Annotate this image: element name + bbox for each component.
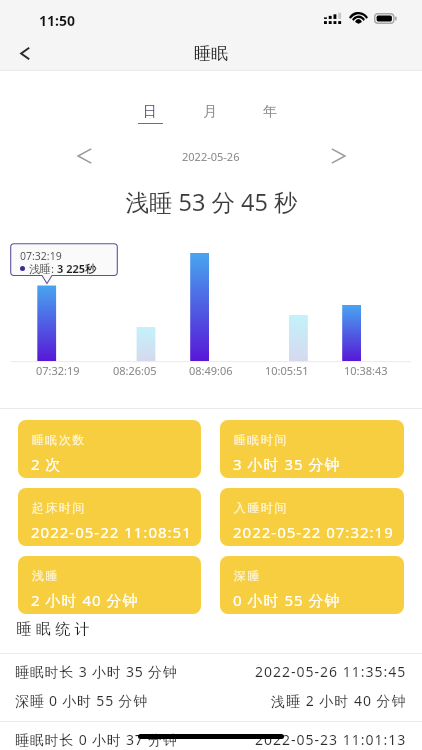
staticText: 起床时间 bbox=[31, 500, 85, 515]
staticText: 2022-05-26 bbox=[182, 149, 240, 164]
button[interactable]: Previous day bbox=[70, 143, 98, 169]
staticText: 睡眠次数 bbox=[31, 432, 85, 447]
button[interactable]: 睡眠时长 3 小时 35 分钟 bbox=[0, 657, 422, 686]
button[interactable]: 深睡 0 小时 55 分钟 bbox=[0, 686, 422, 715]
button[interactable]: 起床时间 bbox=[18, 488, 201, 546]
staticText: 0 小时 55 分钟 bbox=[233, 590, 341, 610]
staticText: 睡眠时长 3 小时 35 分钟 bbox=[15, 662, 178, 681]
button[interactable]: 年 bbox=[254, 103, 286, 123]
button[interactable]: 浅睡 bbox=[18, 556, 201, 614]
button[interactable]: 入睡时间 bbox=[220, 488, 404, 546]
staticText: 2 次 bbox=[31, 454, 62, 474]
button[interactable]: 睡眠时间 bbox=[220, 420, 404, 478]
staticText: 08:26:05 bbox=[113, 363, 157, 378]
staticText: 月 bbox=[203, 103, 217, 121]
staticText: 浅睡 53 分 45 秒 bbox=[125, 186, 298, 218]
staticText: 入睡时间 bbox=[233, 500, 287, 515]
staticText: 10:38:43 bbox=[344, 363, 388, 378]
button[interactable]: 睡眠时长 0 小时 37 分钟 bbox=[0, 725, 422, 750]
button[interactable]: Next day bbox=[324, 143, 352, 169]
staticText: 08:49:06 bbox=[189, 363, 233, 378]
staticText: 2022-05-26 11:35:45 bbox=[255, 662, 407, 681]
button[interactable]: 日 bbox=[134, 103, 166, 124]
staticText: 睡眠 bbox=[194, 43, 228, 64]
staticText: 3 225秒 bbox=[57, 261, 97, 276]
button[interactable]: 月 bbox=[194, 103, 226, 123]
staticText: 浅睡: bbox=[29, 261, 57, 276]
staticText: 浅睡 2 小时 40 分钟 bbox=[271, 691, 407, 710]
button[interactable]: Back bbox=[5, 36, 45, 71]
staticText: 07:32:19 bbox=[20, 249, 62, 263]
button[interactable]: 睡眠次数 bbox=[18, 420, 201, 478]
staticText: 深睡 0 小时 55 分钟 bbox=[15, 691, 148, 710]
staticText: 2022-05-22 11:08:51 bbox=[31, 522, 192, 542]
staticText: 10:05:51 bbox=[265, 363, 309, 378]
staticText: 11:50 bbox=[39, 11, 75, 30]
staticText: 07:32:19 bbox=[36, 363, 80, 378]
staticText: 3 小时 35 分钟 bbox=[233, 454, 341, 474]
staticText: 睡眠时间 bbox=[233, 432, 287, 447]
staticText: 日 bbox=[143, 103, 157, 121]
staticText: 深睡 bbox=[233, 568, 260, 583]
button[interactable]: 深睡 bbox=[220, 556, 404, 614]
staticText: 2022-05-22 07:32:19 bbox=[233, 522, 394, 542]
staticText: 睡眠统计 bbox=[14, 620, 92, 639]
staticText: 睡眠时长 0 小时 37 分钟 bbox=[15, 730, 178, 749]
staticText: 年 bbox=[263, 103, 277, 121]
staticText: 2022-05-23 11:01:13 bbox=[255, 730, 407, 749]
staticText: 浅睡 bbox=[31, 568, 58, 583]
staticText: 2 小时 40 分钟 bbox=[31, 590, 139, 610]
